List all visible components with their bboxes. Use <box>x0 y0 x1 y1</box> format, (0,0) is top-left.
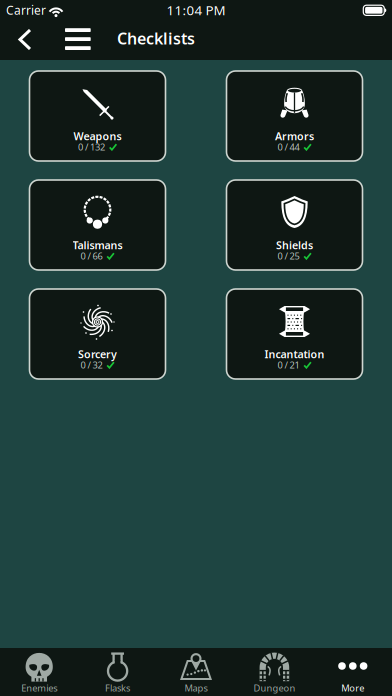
staticText: 0 / 44 <box>277 141 299 153</box>
staticText: Incantation <box>264 347 324 361</box>
staticText: 11:04 PM <box>166 1 225 19</box>
button[interactable]: More <box>314 648 392 696</box>
button[interactable]: Weapons <box>29 71 165 161</box>
staticText: More <box>341 682 364 694</box>
staticText: 0 / 66 <box>80 250 102 262</box>
button[interactable]: Back <box>13 25 37 54</box>
button[interactable]: Incantation <box>226 289 362 379</box>
button[interactable]: Menu <box>65 27 91 52</box>
staticText: Weapons <box>73 129 121 143</box>
staticText: 0 / 25 <box>277 250 299 262</box>
button[interactable]: Dungeon <box>235 648 314 696</box>
staticText: Flasks <box>105 682 130 694</box>
staticText: Talismans <box>72 238 122 252</box>
staticText: Checklists <box>117 28 195 49</box>
button[interactable]: Flasks <box>78 648 157 696</box>
staticText: Shields <box>276 238 313 252</box>
staticText: Armors <box>275 129 314 143</box>
button[interactable]: Talismans <box>29 180 165 270</box>
button[interactable]: Sorcery <box>29 289 165 379</box>
staticText: 0 / 21 <box>277 359 299 371</box>
staticText: 0 / 32 <box>80 359 102 371</box>
staticText: Carrier <box>6 2 46 18</box>
button[interactable]: Maps <box>157 648 235 696</box>
button[interactable]: Enemies <box>0 648 78 696</box>
staticText: Maps <box>184 682 207 694</box>
staticText: Enemies <box>21 682 57 694</box>
button[interactable]: Shields <box>226 180 362 270</box>
staticText: Sorcery <box>78 347 117 361</box>
staticText: 0 / 132 <box>78 141 105 153</box>
staticText: Dungeon <box>253 682 295 694</box>
button[interactable]: Armors <box>226 71 362 161</box>
